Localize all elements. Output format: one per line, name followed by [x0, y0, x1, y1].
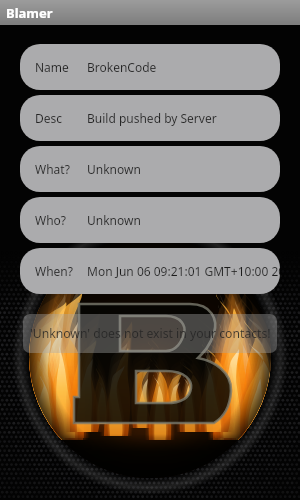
staticText: When?	[35, 263, 73, 279]
staticText: What?	[35, 161, 70, 177]
staticText: Blamer	[6, 4, 53, 22]
staticText: Build pushed by Server	[87, 110, 217, 126]
button[interactable]: 'Unknown' does not exist in your contact…	[23, 314, 277, 353]
staticText: Mon Jun 06 09:21:01 GMT+10:00 2011	[87, 263, 280, 279]
button[interactable]: Who?	[20, 197, 280, 243]
staticText: BrokenCode	[87, 59, 157, 75]
staticText: Who?	[35, 212, 67, 228]
button[interactable]: Name	[20, 44, 280, 90]
staticText: Unknown	[87, 212, 141, 228]
button[interactable]: When?	[20, 248, 280, 294]
button[interactable]: Blamer	[0, 0, 300, 25]
staticText: Unknown	[87, 161, 141, 177]
staticText: Desc	[35, 110, 63, 126]
button[interactable]: What?	[20, 146, 280, 192]
button[interactable]: Desc	[20, 95, 280, 141]
staticText: 'Unknown' does not exist in your contact…	[30, 325, 271, 342]
staticText: Name	[35, 59, 69, 75]
